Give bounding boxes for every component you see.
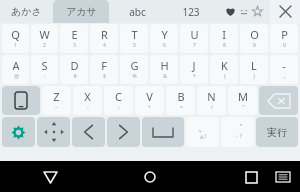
button[interactable]: - (270, 55, 298, 84)
staticText: M (238, 89, 248, 104)
staticText: / (211, 104, 213, 111)
button[interactable]: Close keyboard (270, 0, 300, 23)
staticText: ゜ (233, 122, 243, 133)
staticText: I (222, 27, 226, 42)
button[interactable]: Z (42, 86, 71, 115)
button[interactable]: 123 (166, 0, 216, 23)
staticText: 5 (133, 42, 136, 49)
staticText: T (131, 27, 138, 42)
button[interactable]: 、 (186, 117, 219, 147)
button[interactable]: 実行 (256, 117, 298, 147)
staticText: 123 (182, 5, 200, 19)
button[interactable]: H (150, 55, 178, 84)
button[interactable]: T (120, 24, 148, 53)
button[interactable]: Move left (72, 117, 105, 147)
button[interactable]: X (73, 86, 102, 115)
staticText: X (84, 89, 91, 104)
button[interactable]: R (90, 24, 118, 53)
button[interactable]: あかさ (1, 0, 51, 23)
staticText: K (221, 58, 228, 73)
button[interactable]: K (210, 55, 238, 84)
button[interactable]: Q (2, 24, 29, 53)
staticText: S (41, 58, 48, 73)
button[interactable]: F (90, 55, 118, 84)
button[interactable]: I (210, 24, 238, 53)
staticText: - (44, 73, 46, 80)
button[interactable]: Cursor pad (37, 117, 70, 147)
staticText: U (190, 27, 199, 42)
staticText: 8 (223, 42, 226, 49)
staticText: P (281, 27, 288, 42)
button[interactable]: Home (135, 162, 165, 192)
staticText: G (130, 58, 139, 73)
button[interactable]: abc (111, 0, 164, 23)
button[interactable]: U (180, 24, 208, 53)
button[interactable]: ゜ (221, 117, 254, 147)
button[interactable]: N (197, 86, 226, 115)
button[interactable]: E (60, 24, 88, 53)
button[interactable]: V (135, 86, 164, 115)
button[interactable]: Back (35, 162, 65, 192)
button[interactable] (217, 0, 270, 23)
button[interactable]: Y (150, 24, 178, 53)
staticText: " (242, 104, 245, 111)
button[interactable]: Settings (2, 117, 35, 147)
staticText: : (87, 104, 89, 111)
staticText: $ (103, 73, 106, 80)
staticText: あかさ (11, 5, 42, 18)
staticText: 7 (193, 42, 196, 49)
staticText: # (73, 73, 77, 80)
staticText: + (148, 104, 151, 111)
button[interactable]: G (120, 55, 148, 84)
button[interactable]: P (270, 24, 298, 53)
button[interactable]: D (60, 55, 88, 84)
staticText: W (39, 27, 50, 42)
button[interactable]: L (240, 55, 268, 84)
staticText: abc (129, 5, 146, 19)
staticText: = (180, 104, 183, 111)
button[interactable]: Move right (107, 117, 140, 147)
staticText: * (193, 73, 196, 80)
staticText: V (146, 89, 153, 104)
staticText: A (12, 58, 20, 73)
staticText: ( (224, 73, 226, 80)
staticText: ぁ! (199, 133, 206, 140)
staticText: 9 (253, 42, 256, 49)
button[interactable]: B (166, 86, 195, 115)
staticText: E (71, 27, 78, 42)
button[interactable]: M (228, 86, 257, 115)
staticText: Y (161, 27, 168, 42)
staticText: N (207, 89, 216, 104)
button[interactable]: Space (142, 117, 184, 147)
staticText: @ (14, 73, 19, 80)
staticText: 2 (43, 42, 46, 49)
staticText: B (177, 89, 185, 104)
button[interactable]: O (240, 24, 268, 53)
staticText: % (132, 73, 137, 80)
button[interactable]: A (2, 55, 29, 84)
staticText: Q (11, 27, 20, 42)
staticText: L (251, 58, 257, 73)
button[interactable]: J (180, 55, 208, 84)
staticText: Z (53, 89, 60, 104)
button[interactable]: Switch keyboard (270, 164, 296, 190)
button[interactable]: Recent apps (238, 164, 264, 190)
button[interactable]: Backspace (259, 86, 298, 115)
button[interactable]: Device input (2, 86, 40, 115)
button[interactable]: W (31, 24, 58, 53)
staticText: ・? (234, 133, 242, 140)
staticText: R (101, 27, 108, 42)
staticText: 3 (73, 42, 76, 49)
staticText: & (163, 73, 167, 80)
button[interactable]: S (31, 55, 58, 84)
staticText: ; (118, 104, 120, 111)
staticText: 、 (198, 122, 207, 133)
button[interactable]: アカサ (53, 0, 109, 23)
staticText: 4 (103, 42, 106, 49)
staticText: O (250, 27, 259, 42)
staticText: ) (253, 73, 255, 80)
staticText: - (282, 58, 286, 73)
button[interactable]: C (104, 86, 133, 115)
staticText: J (192, 58, 196, 73)
staticText: 1 (14, 42, 17, 49)
